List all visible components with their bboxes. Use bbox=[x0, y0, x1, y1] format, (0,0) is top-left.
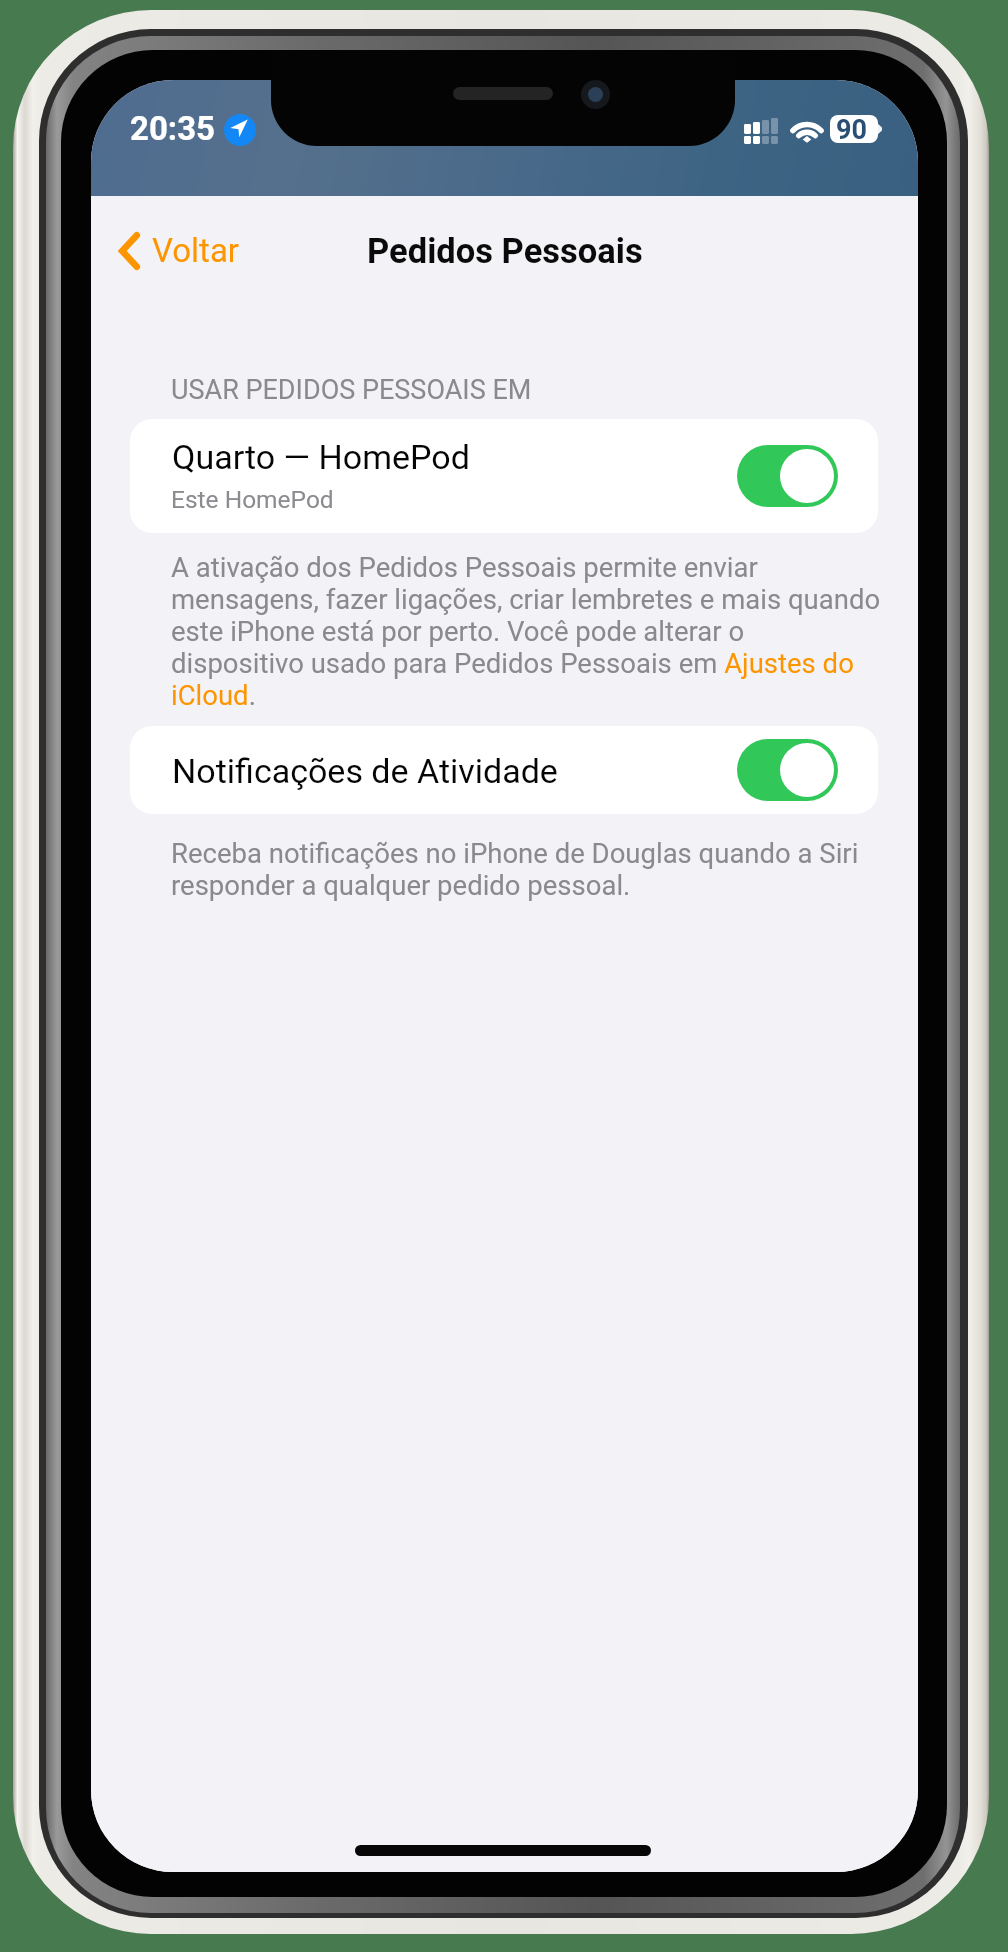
button[interactable]: Ativar bbox=[737, 739, 838, 801]
staticText: Este HomePod bbox=[171, 485, 334, 514]
button[interactable]: Notificações de Atividade bbox=[130, 726, 878, 814]
other: Sinal bbox=[744, 117, 778, 144]
staticText: 20:35 bbox=[130, 109, 216, 148]
button[interactable]: Quarto — HomePod bbox=[130, 419, 878, 533]
staticText: A ativação dos Pedidos Pessoais permite … bbox=[171, 551, 918, 711]
other: Bateria 90% bbox=[830, 115, 883, 143]
staticText: Pedidos Pessoais bbox=[367, 231, 643, 271]
staticText: Voltar bbox=[152, 231, 240, 270]
staticText: USAR PEDIDOS PESSOAIS EM bbox=[171, 374, 532, 406]
staticText: Receba notificações no iPhone de Douglas… bbox=[171, 837, 918, 901]
staticText: Quarto — HomePod bbox=[172, 437, 470, 477]
other: Wi-Fi bbox=[791, 116, 824, 143]
button[interactable]: Voltar bbox=[107, 217, 252, 284]
staticText: 90 bbox=[836, 115, 867, 142]
other: Localização bbox=[224, 114, 256, 146]
button[interactable]: Ativar bbox=[737, 445, 838, 507]
staticText: Notificações de Atividade bbox=[172, 751, 558, 791]
